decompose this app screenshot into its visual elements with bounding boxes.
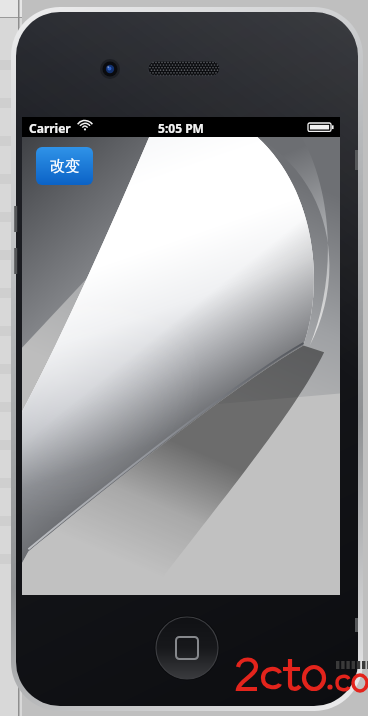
button[interactable]: 改变	[36, 147, 93, 185]
staticText: 改变	[50, 157, 80, 176]
staticText: Carrier	[29, 120, 71, 136]
staticText: 5:05 PM	[158, 120, 204, 135]
button[interactable]: Home	[156, 617, 218, 679]
